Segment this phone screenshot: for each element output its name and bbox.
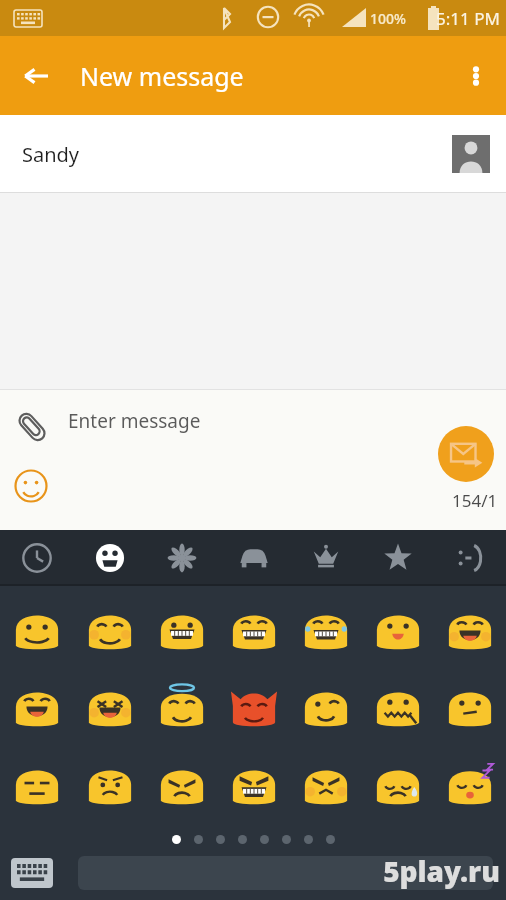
button[interactable]: Send — [438, 426, 494, 482]
button[interactable]: Favorites — [362, 530, 434, 586]
button[interactable]: confused — [73, 749, 146, 819]
button[interactable]: devil — [218, 671, 290, 741]
button[interactable]: Smileys — [73, 530, 146, 586]
button[interactable]: Nature — [146, 530, 218, 586]
staticText: 5play.ru — [383, 852, 500, 890]
button[interactable]: smile — [0, 594, 73, 664]
button[interactable]: neutral — [434, 671, 506, 741]
button[interactable]: Sandy — [0, 115, 506, 193]
staticText: New message — [80, 59, 244, 93]
button[interactable]: grin — [146, 594, 218, 664]
button[interactable]: Attach — [8, 403, 56, 451]
button[interactable]: angry — [146, 749, 218, 819]
button[interactable]: blush — [73, 594, 146, 664]
button[interactable]: angel — [146, 671, 218, 741]
button[interactable]: Keyboard — [10, 851, 54, 895]
button[interactable]: Objects — [290, 530, 362, 586]
staticText: 5:11 PM — [436, 7, 500, 30]
button[interactable]: sleep — [434, 749, 506, 819]
button[interactable]: expressionless — [0, 749, 73, 819]
staticText: Enter message — [68, 408, 201, 434]
button[interactable]: mad — [290, 749, 362, 819]
staticText: Sandy — [22, 141, 80, 168]
staticText: 100% — [370, 9, 406, 28]
button[interactable]: Space — [78, 856, 493, 890]
button[interactable]: rage — [218, 749, 290, 819]
staticText: 154/1 — [452, 489, 498, 512]
button[interactable]: More options — [446, 36, 506, 115]
button[interactable]: biggrin — [218, 594, 290, 664]
button[interactable]: Add recipient — [452, 135, 490, 173]
button[interactable]: Places — [218, 530, 290, 586]
button[interactable]: squint — [434, 594, 506, 664]
button[interactable]: joy — [290, 594, 362, 664]
button[interactable]: winktear — [73, 671, 146, 741]
button[interactable]: Recent — [0, 530, 73, 586]
button[interactable]: wink — [290, 671, 362, 741]
button[interactable]: laugh — [0, 671, 73, 741]
button[interactable]: zip — [362, 671, 434, 741]
button[interactable]: Back — [0, 36, 72, 115]
button[interactable]: Emoji — [8, 463, 54, 509]
button[interactable]: plain — [362, 594, 434, 664]
button[interactable]: Text emoticons — [434, 530, 506, 586]
button[interactable]: cry — [362, 749, 434, 819]
